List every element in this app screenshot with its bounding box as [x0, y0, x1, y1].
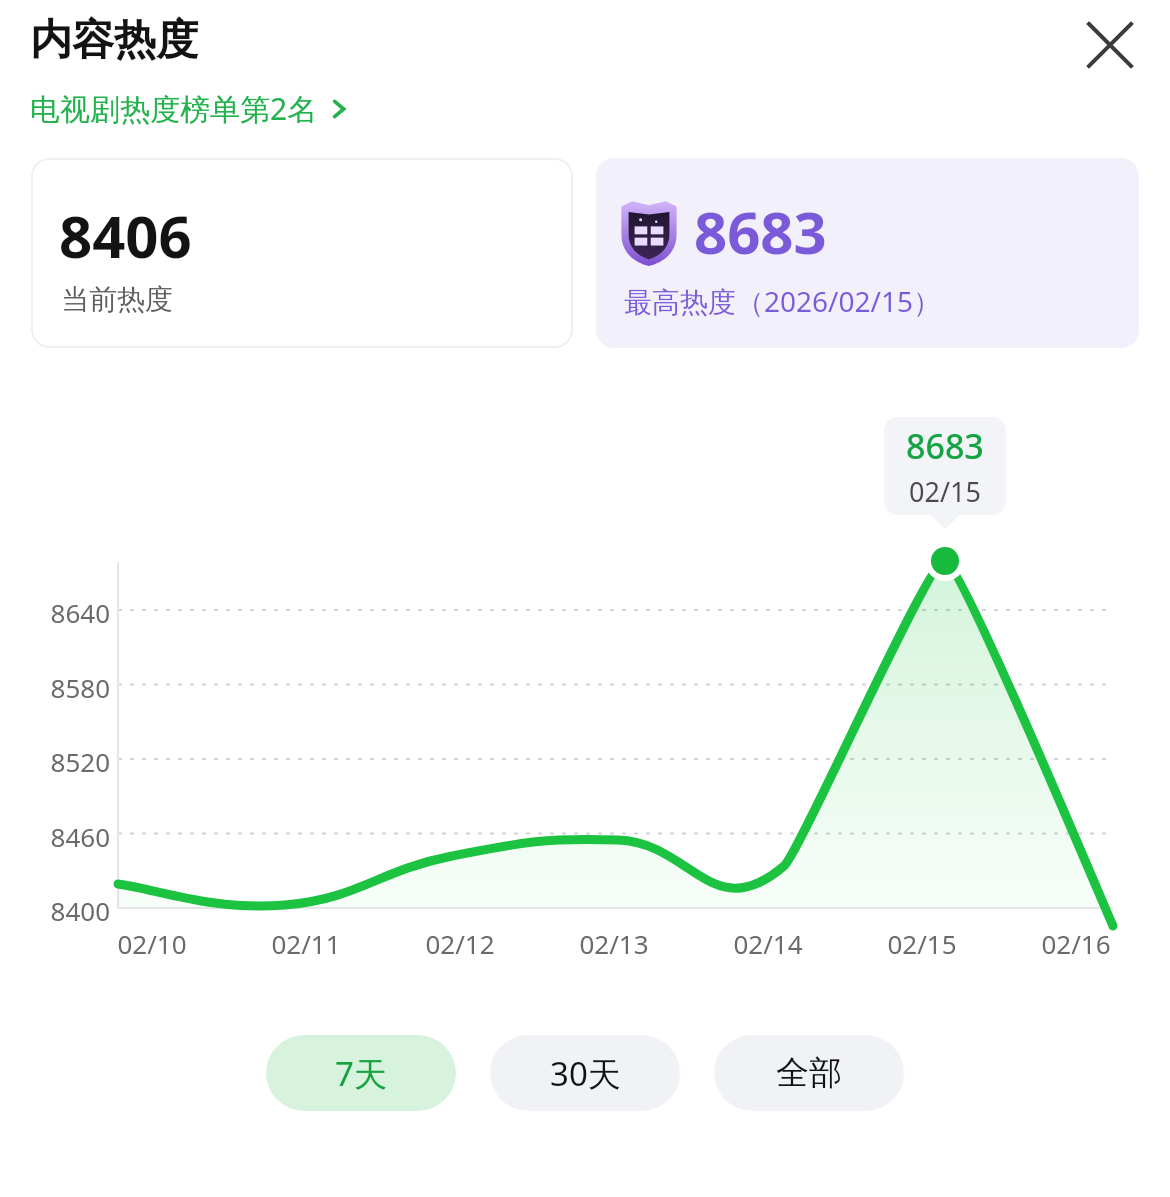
button[interactable]: 全部	[714, 1035, 904, 1111]
staticText: 8640	[34, 595, 110, 630]
staticText: 8406	[59, 196, 192, 275]
staticText: 电视剧热度榜单第2名	[30, 88, 318, 129]
staticText: 02/15	[909, 473, 981, 510]
button[interactable]: 30天	[490, 1035, 680, 1111]
staticText: 7天	[335, 1051, 387, 1096]
staticText: 8580	[34, 670, 110, 705]
staticText: 30天	[550, 1051, 621, 1096]
staticText: 02/14	[708, 926, 828, 961]
button[interactable]: Close	[1075, 10, 1145, 80]
staticText: 02/13	[554, 926, 674, 961]
staticText: 全部	[776, 1052, 842, 1094]
staticText: 02/12	[400, 926, 520, 961]
staticText: 8683	[694, 192, 827, 271]
staticText: 最高热度（2026/02/15）	[624, 282, 941, 320]
staticText: 02/10	[92, 926, 212, 961]
staticText: 8683	[906, 423, 984, 469]
staticText: 8460	[34, 819, 110, 854]
staticText: 02/11	[246, 926, 366, 961]
button[interactable]: 8406	[31, 158, 573, 348]
button[interactable]: 电视剧热度榜单第2名	[30, 88, 352, 129]
staticText: 8520	[34, 744, 110, 779]
staticText: 02/16	[1016, 926, 1136, 961]
staticText: 内容热度	[30, 14, 198, 67]
staticText: 8400	[34, 893, 110, 928]
button[interactable]: 7天	[266, 1035, 456, 1111]
staticText: 当前热度	[61, 282, 173, 317]
button[interactable]: 8683	[596, 158, 1139, 348]
staticText: 02/15	[862, 926, 982, 961]
